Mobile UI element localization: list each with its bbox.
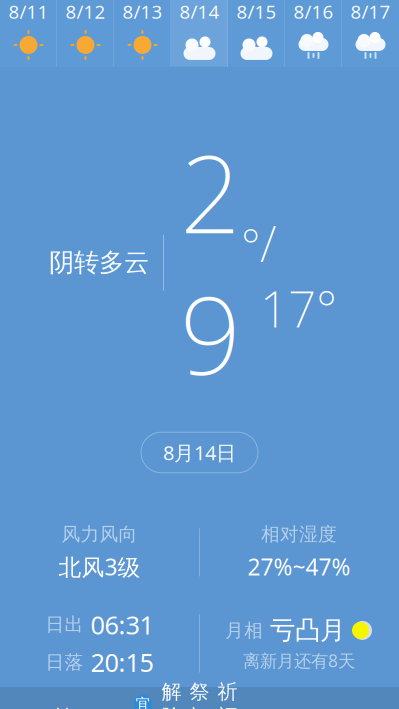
- staticText: 阴转多云: [49, 247, 149, 278]
- button[interactable]: 周三: [285, 0, 342, 67]
- staticText: 8/11: [8, 0, 48, 24]
- staticText: /17°: [260, 210, 337, 341]
- staticText: 解除: [161, 680, 181, 709]
- staticText: 27%~47%: [247, 552, 350, 582]
- staticText: 8月14日: [163, 439, 236, 466]
- staticText: 北风3级: [58, 552, 140, 582]
- button[interactable]: 365: [0, 687, 399, 709]
- staticText: 宜: [135, 695, 150, 709]
- staticText: 日出: [45, 613, 83, 636]
- button[interactable]: 周二: [228, 0, 285, 67]
- staticText: 日落: [45, 651, 83, 674]
- button[interactable]: 周六: [57, 0, 114, 67]
- staticText: 20:15: [90, 645, 153, 679]
- staticText: °: [241, 215, 260, 276]
- staticText: 29: [180, 121, 241, 404]
- button[interactable]: 周四: [342, 0, 399, 67]
- staticText: 8/14: [179, 0, 219, 24]
- staticText: 8/16: [293, 0, 333, 24]
- staticText: 离新月还有8天: [243, 649, 355, 672]
- button[interactable]: 下周一: [171, 0, 228, 67]
- staticText: 风力风向: [61, 523, 137, 546]
- staticText: 亏凸月: [270, 615, 345, 646]
- staticText: 8/17: [350, 0, 390, 24]
- button[interactable]: 周五: [0, 0, 57, 67]
- staticText: 06:31: [90, 608, 153, 641]
- staticText: 相对湿度: [261, 523, 337, 546]
- staticText: 8/13: [122, 0, 162, 24]
- button[interactable]: 周日: [114, 0, 171, 67]
- staticText: 8/12: [65, 0, 105, 24]
- staticText: 8/15: [236, 0, 276, 24]
- staticText: 祭祀: [189, 680, 209, 709]
- staticText: 祈福: [217, 680, 237, 709]
- staticText: 月相: [225, 619, 263, 642]
